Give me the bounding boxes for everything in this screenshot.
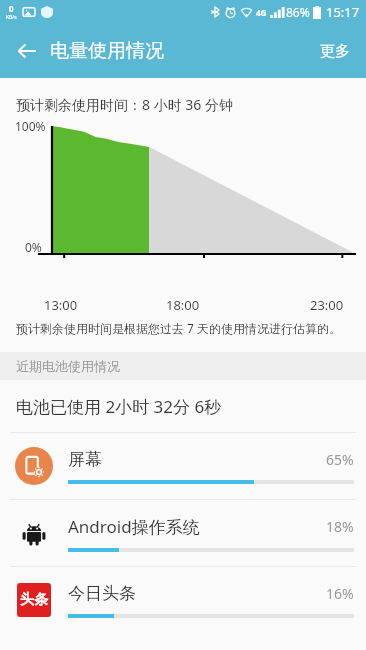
staticText: 23:00 bbox=[310, 296, 344, 314]
button[interactable]: Android操作系统 bbox=[0, 500, 366, 566]
staticText: 0% bbox=[25, 239, 42, 255]
staticText: 屏幕 bbox=[68, 449, 326, 470]
staticText: 100% bbox=[15, 118, 46, 134]
staticText: 电量使用情况 bbox=[50, 39, 164, 63]
staticText: KB/s bbox=[6, 14, 17, 21]
staticText: 0 bbox=[9, 3, 14, 14]
staticText: 预计剩余使用时间：8 小时 36 分钟 bbox=[16, 95, 233, 114]
staticText: 更多 bbox=[320, 42, 350, 61]
staticText: 86% bbox=[286, 4, 310, 20]
staticText: 预计剩余使用时间是根据您过去 7 天的使用情况进行估算的。 bbox=[16, 320, 342, 336]
staticText: 16% bbox=[326, 584, 354, 603]
staticText: 电池已使用 2小时 32分 6秒 bbox=[16, 395, 222, 418]
staticText: 头条 bbox=[20, 591, 48, 609]
staticText: 4G bbox=[256, 7, 267, 18]
staticText: 65% bbox=[326, 450, 354, 469]
button[interactable]: 电池已使用 2小时 32分 6秒 bbox=[0, 380, 366, 432]
staticText: 今日头条 bbox=[68, 583, 326, 604]
staticText: 15:17 bbox=[326, 3, 360, 21]
button[interactable]: Back bbox=[8, 32, 46, 70]
staticText: 近期电池使用情况 bbox=[16, 358, 120, 374]
staticText: 18:00 bbox=[166, 296, 200, 314]
button[interactable]: 屏幕 bbox=[0, 433, 366, 499]
staticText: 18% bbox=[326, 517, 354, 536]
staticText: Android操作系统 bbox=[68, 515, 326, 538]
button[interactable]: 更多 bbox=[310, 34, 360, 69]
staticText: 13:00 bbox=[44, 296, 78, 314]
button[interactable]: 头条 bbox=[0, 567, 366, 633]
